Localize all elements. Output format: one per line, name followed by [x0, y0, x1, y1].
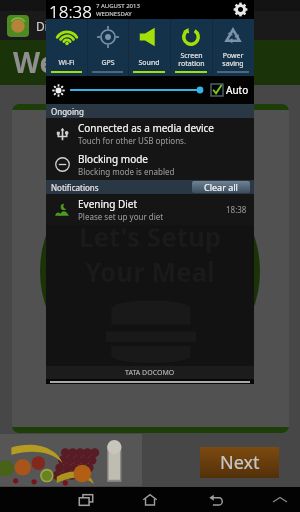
staticText: Blocking mode is enabled	[78, 166, 175, 177]
staticText: Next	[220, 450, 260, 475]
button[interactable]: Next	[200, 447, 279, 478]
staticText: Notifications	[51, 182, 99, 193]
button[interactable]: Brightness	[70, 84, 204, 96]
staticText: Let's Setup	[79, 219, 222, 254]
staticText: Sound	[138, 58, 160, 68]
staticText: Wi-Fi	[58, 58, 75, 68]
button[interactable]: Connected as a media device	[46, 118, 254, 149]
button[interactable]: Auto	[211, 83, 249, 97]
button[interactable]: Sound	[128, 19, 170, 76]
staticText: TATA DOCOMO	[125, 368, 175, 378]
staticText: Clear all	[204, 181, 238, 193]
button[interactable]: Power saving	[212, 19, 254, 76]
staticText: WEDNESDAY	[96, 10, 132, 18]
button[interactable]: Screen rotation	[170, 19, 212, 76]
staticText: Your Meal	[85, 254, 215, 289]
staticText: Auto	[226, 83, 249, 97]
staticText: Screen rotation	[178, 51, 205, 68]
staticText: GPS	[101, 58, 115, 68]
button[interactable]: Collapse	[267, 487, 293, 512]
button[interactable]: Evening Diet	[46, 194, 254, 225]
button[interactable]: Home	[136, 487, 164, 512]
staticText: 7 AUGUST 2013	[96, 2, 140, 10]
staticText: Connected as a media device	[78, 121, 214, 135]
button[interactable]: Recents	[72, 487, 100, 512]
button[interactable]: Blocking mode	[46, 149, 254, 180]
staticText: Touch for other USB options.	[78, 135, 187, 146]
staticText: Diet Plan	[36, 18, 87, 34]
staticText: 18:38	[49, 0, 92, 19]
staticText: Please set up your diet	[78, 211, 164, 222]
button[interactable]: Clear all	[192, 181, 250, 193]
staticText: Welcome	[13, 43, 141, 81]
staticText: Blocking mode	[78, 152, 148, 166]
staticText: Evening Diet	[78, 197, 138, 211]
button[interactable]: Back	[202, 487, 230, 512]
staticText: 18:38	[226, 204, 247, 215]
button[interactable]: Wi-Fi	[46, 19, 87, 76]
button[interactable]: GPS	[87, 19, 128, 76]
staticText: Power saving	[222, 51, 244, 68]
button[interactable]: Settings	[231, 0, 250, 19]
staticText: Ongoing	[51, 106, 84, 117]
